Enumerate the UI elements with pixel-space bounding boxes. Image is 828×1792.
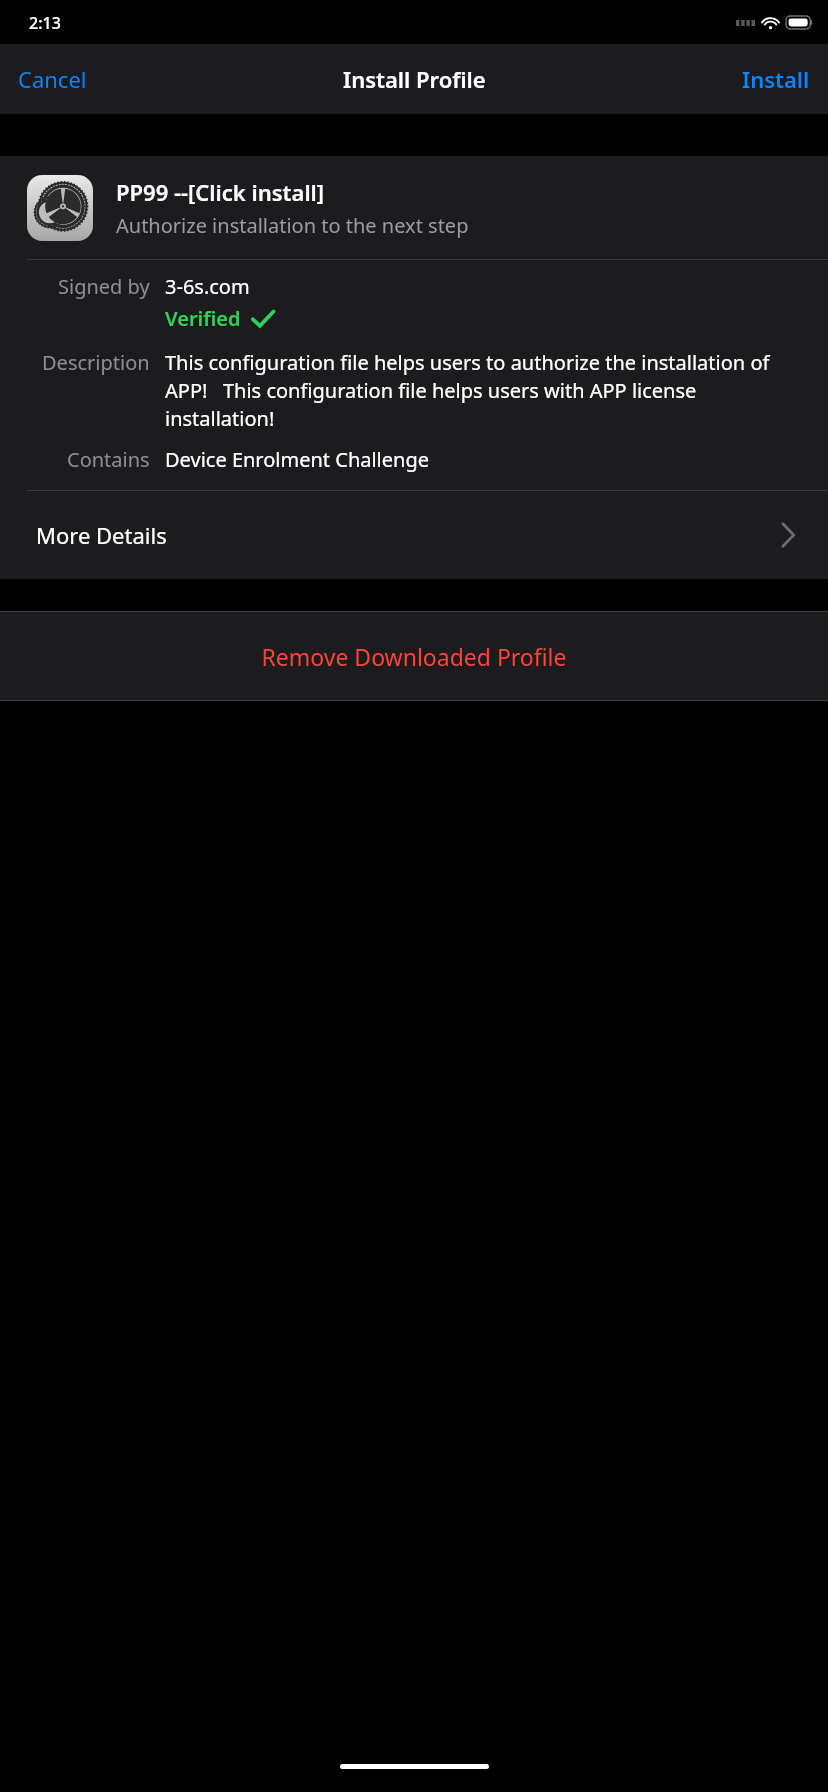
staticText: Device Enrolment Challenge <box>165 446 429 473</box>
button[interactable]: More Details <box>0 491 828 579</box>
staticText: Description <box>42 349 150 376</box>
staticText: PP99 --[Click install] <box>116 177 325 207</box>
staticText: Contains <box>67 446 150 473</box>
staticText: Cancel <box>18 64 87 94</box>
staticText: Install Profile <box>343 64 486 94</box>
staticText: More Details <box>36 520 167 550</box>
staticText: Remove Downloaded Profile <box>261 641 567 672</box>
staticText: Verified <box>165 305 241 332</box>
staticText: Signed by <box>58 273 150 300</box>
staticText: 3-6s.com <box>165 273 250 300</box>
staticText: Install <box>742 64 810 94</box>
button[interactable]: Install <box>724 52 828 106</box>
staticText: Authorize installation to the next step <box>116 212 469 239</box>
staticText: 2:13 <box>29 12 61 34</box>
button[interactable]: Cancel <box>0 52 105 106</box>
button[interactable]: Remove Downloaded Profile <box>0 612 828 700</box>
staticText: This configuration file helps users to a… <box>165 349 806 432</box>
